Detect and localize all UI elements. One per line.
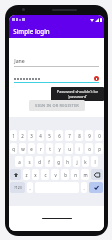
button[interactable]: 7 — [65, 130, 73, 141]
staticText: 3 — [30, 133, 33, 139]
button[interactable]: 2 — [19, 130, 26, 141]
button[interactable]: h — [64, 156, 71, 167]
button[interactable]: 6 — [55, 130, 63, 141]
button[interactable]: SIGN IN OR REGISTER — [29, 100, 85, 111]
staticText: x — [34, 172, 37, 178]
button[interactable]: Enter — [89, 182, 103, 193]
button[interactable]: 4 — [37, 130, 44, 141]
other: Error — [94, 76, 99, 81]
staticText: h — [66, 159, 69, 165]
staticText: 4 — [39, 133, 42, 139]
staticText: 8 — [78, 133, 81, 139]
button[interactable]: j — [73, 156, 80, 167]
button[interactable]: n — [71, 169, 79, 180]
staticText: o — [88, 146, 91, 152]
staticText: r — [40, 146, 42, 152]
button[interactable]: Shift — [10, 169, 21, 180]
staticText: s — [28, 159, 31, 165]
staticText: m — [83, 172, 88, 178]
button[interactable]: z — [23, 169, 30, 180]
staticText: v — [54, 172, 57, 178]
staticText: 6 — [58, 133, 61, 139]
staticText: . — [83, 185, 85, 191]
staticText: j — [76, 159, 78, 165]
button[interactable]: v — [51, 169, 59, 180]
staticText: q — [12, 146, 15, 152]
staticText: e — [30, 146, 33, 152]
button[interactable]: . — [81, 182, 87, 193]
staticText: , — [29, 185, 31, 191]
staticText: 5 — [48, 133, 51, 139]
staticText: k — [84, 159, 87, 165]
staticText: 9 — [88, 133, 91, 139]
button[interactable]: Error — [14, 76, 99, 83]
button[interactable]: 1 — [10, 130, 17, 141]
button[interactable]: o — [85, 143, 93, 154]
staticText: 2 — [21, 133, 24, 139]
button[interactable]: f — [45, 156, 53, 167]
staticText: 7 — [68, 133, 71, 139]
button[interactable]: 3 — [28, 130, 35, 141]
staticText: i — [78, 146, 80, 152]
button[interactable]: 5 — [46, 130, 53, 141]
staticText: b — [64, 172, 67, 178]
staticText: u — [68, 146, 71, 152]
button[interactable]: g — [55, 156, 62, 167]
button[interactable]: m — [81, 169, 89, 180]
button[interactable]: u — [65, 143, 73, 154]
button[interactable]: Jane — [14, 57, 99, 67]
button[interactable]: 9 — [85, 130, 93, 141]
staticText: f — [48, 159, 50, 165]
staticText: Password shouldn't be 'password' — [53, 89, 102, 99]
button[interactable]: , — [27, 182, 33, 193]
button[interactable]: ?123 — [10, 182, 25, 193]
staticText: 1 — [12, 133, 15, 139]
button[interactable]: 0 — [95, 130, 103, 141]
button[interactable]: k — [82, 156, 89, 167]
staticText: a — [18, 159, 21, 165]
button[interactable]: d — [35, 156, 43, 167]
staticText: n — [74, 172, 77, 178]
staticText: t — [49, 146, 51, 152]
staticText: ?123 — [14, 185, 22, 190]
button[interactable]: b — [61, 169, 69, 180]
button[interactable]: x — [32, 169, 39, 180]
button[interactable]: e — [28, 143, 35, 154]
button[interactable]: c — [41, 169, 49, 180]
button[interactable]: i — [75, 143, 83, 154]
staticText: g — [57, 159, 60, 165]
button[interactable]: s — [25, 156, 33, 167]
button[interactable]: a — [15, 156, 23, 167]
button[interactable]: 8 — [75, 130, 83, 141]
staticText: y — [58, 146, 61, 152]
staticText: Simple login — [13, 27, 50, 35]
button[interactable]: p — [95, 143, 103, 154]
staticText: 0 — [98, 133, 101, 139]
staticText: SIGN IN OR REGISTER — [35, 103, 79, 108]
staticText: p — [98, 146, 101, 152]
button[interactable]: w — [19, 143, 26, 154]
button[interactable]: r — [37, 143, 44, 154]
button[interactable]: l — [91, 156, 98, 167]
staticText: z — [25, 172, 28, 178]
staticText: d — [38, 159, 41, 165]
staticText: Jane — [14, 57, 25, 64]
staticText: c — [44, 172, 47, 178]
button[interactable]: Backspace — [91, 169, 103, 180]
staticText: l — [94, 159, 96, 165]
button[interactable]: y — [55, 143, 63, 154]
staticText: w — [21, 146, 25, 152]
button[interactable]: q — [10, 143, 17, 154]
button[interactable]: t — [46, 143, 53, 154]
